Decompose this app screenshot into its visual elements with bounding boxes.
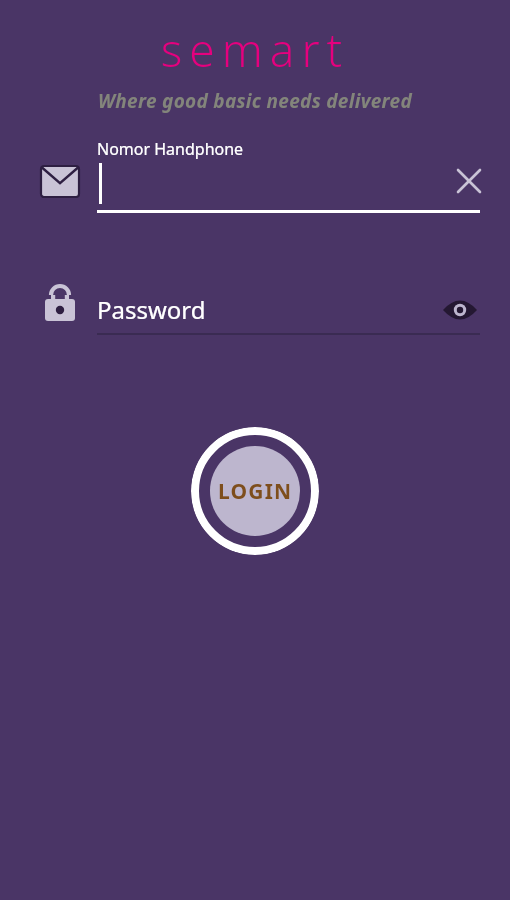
button[interactable]: Email bbox=[36, 161, 84, 201]
button[interactable]: LOGIN bbox=[191, 427, 319, 555]
button[interactable]: Password bbox=[40, 283, 82, 325]
staticText: Nomor Handphone bbox=[97, 138, 244, 160]
staticText: Where good basic needs delivered bbox=[0, 88, 510, 114]
button[interactable]: Show password bbox=[441, 294, 479, 326]
staticText: semart bbox=[0, 18, 510, 81]
staticText: Password bbox=[97, 293, 206, 326]
button[interactable]: Clear bbox=[452, 164, 486, 198]
staticText: LOGIN bbox=[218, 477, 293, 506]
